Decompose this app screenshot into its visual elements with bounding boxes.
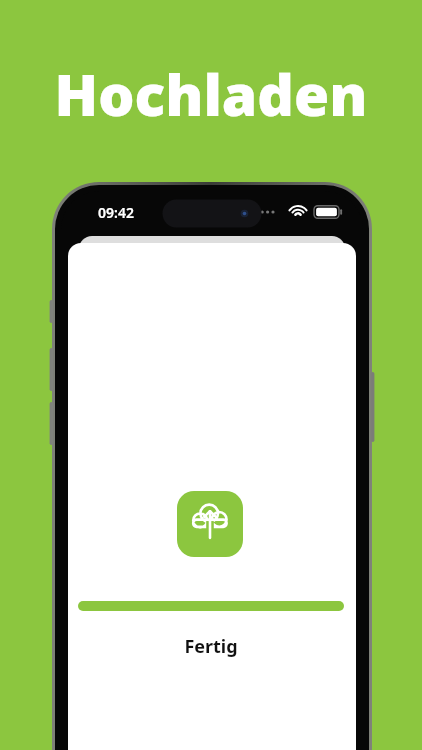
button[interactable] (161, 632, 261, 660)
staticText: Hochladen (0, 55, 422, 750)
staticText: 09:42 (98, 203, 134, 222)
button[interactable]: Upload to cloud (177, 491, 243, 557)
button[interactable]: Upload progress complete (78, 596, 344, 616)
staticText: Fertig (0, 634, 422, 750)
